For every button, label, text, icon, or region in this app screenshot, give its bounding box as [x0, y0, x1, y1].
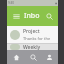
button[interactable]: Project update [7, 26, 58, 43]
button[interactable]: Profile [42, 50, 56, 64]
button[interactable]: Search [26, 50, 40, 64]
button[interactable]: Open navigation menu [10, 10, 22, 22]
staticText: 9:30 [8, 1, 14, 5]
button[interactable]: Home [9, 50, 23, 64]
button[interactable]: Weekly digest [7, 44, 58, 50]
button[interactable]: Search [43, 10, 55, 22]
staticText: Thanks for the notes [23, 36, 55, 41]
staticText: Weekly digest [23, 44, 55, 50]
staticText: Inbox [24, 11, 43, 21]
staticText: Project update [23, 28, 55, 35]
